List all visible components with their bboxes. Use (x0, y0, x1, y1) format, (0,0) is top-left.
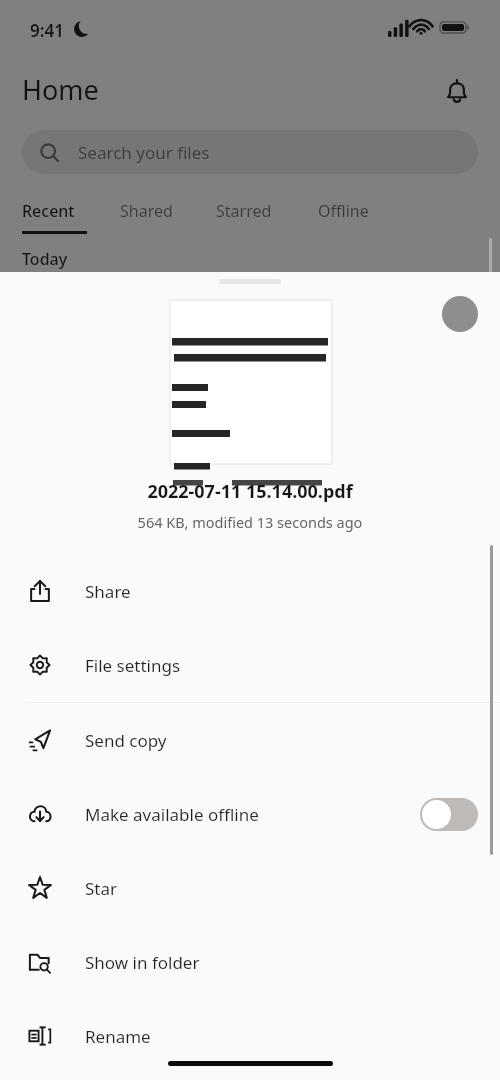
staticText: Home (22, 71, 99, 108)
button[interactable]: Recent (22, 200, 75, 222)
button[interactable]: File settings (0, 628, 500, 702)
staticText: 2022-07-11 15.14.00.pdf (0, 479, 500, 504)
button[interactable]: Rename (0, 999, 500, 1073)
button[interactable]: Offline (318, 200, 369, 222)
staticText: Today (22, 248, 68, 270)
staticText: Star (85, 877, 118, 900)
button[interactable]: Notifications (438, 72, 476, 110)
button[interactable]: Starred (216, 200, 272, 222)
staticText: Send copy (85, 729, 167, 752)
button[interactable]: Star (0, 851, 500, 925)
button[interactable]: Share (0, 554, 500, 628)
staticText: Share (85, 580, 131, 603)
staticText: Shared (120, 200, 173, 222)
button[interactable]: Account (442, 296, 478, 332)
staticText: Rename (85, 1025, 151, 1048)
staticText: Starred (216, 200, 272, 222)
staticText: File settings (85, 654, 181, 677)
button[interactable]: Show in folder (0, 925, 500, 999)
staticText: 9:41 (30, 19, 64, 42)
staticText: Show in folder (85, 951, 200, 974)
button[interactable]: Make available offline (0, 777, 500, 851)
staticText: Search your files (78, 141, 210, 164)
staticText: Make available offline (85, 803, 259, 826)
button[interactable] (420, 798, 478, 831)
staticText: 564 KB, modified 13 seconds ago (0, 512, 500, 532)
staticText: Offline (318, 200, 369, 222)
button[interactable]: Search your files (22, 130, 478, 174)
button[interactable]: Send copy (0, 703, 500, 777)
staticText: Recent (22, 200, 75, 222)
button[interactable]: Shared (120, 200, 173, 222)
